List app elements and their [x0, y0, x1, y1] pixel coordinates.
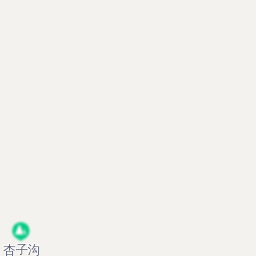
staticText: 杏子沟: [3, 241, 41, 256]
staticText: 杏子沟: [3, 242, 41, 256]
staticText: 杏子沟: [3, 242, 41, 256]
staticText: 杏子沟: [3, 242, 41, 256]
staticText: 杏子沟: [2, 241, 40, 256]
staticText: 杏子沟: [2, 242, 40, 256]
button[interactable]: 杏子沟 景点标记: [0, 218, 44, 256]
staticText: 杏子沟: [3, 241, 41, 256]
staticText: 杏子沟: [2, 242, 40, 256]
button[interactable]: 杏子沟: [3, 242, 41, 256]
